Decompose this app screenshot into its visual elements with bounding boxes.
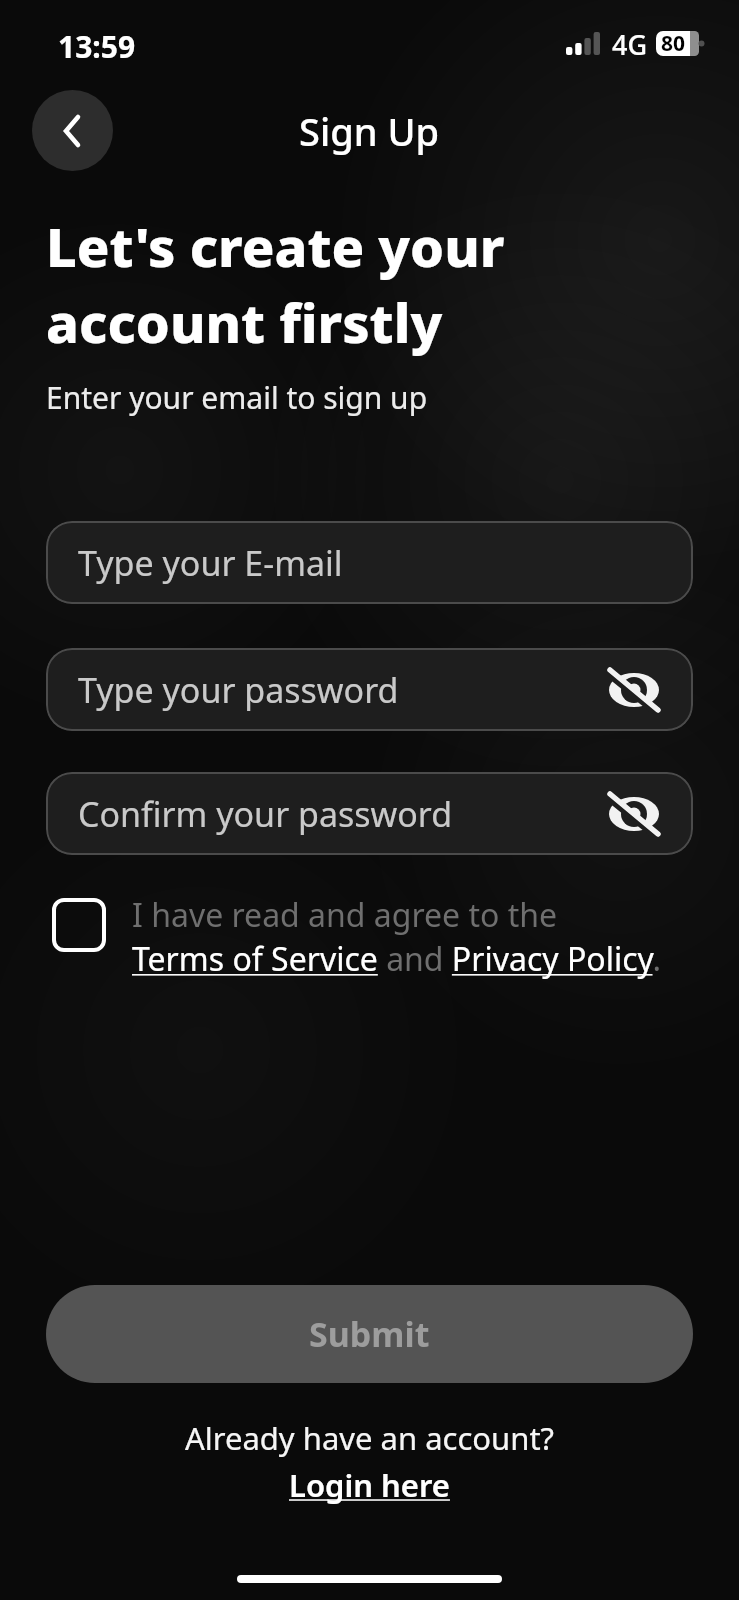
staticText: Sign Up — [299, 105, 440, 157]
staticText: 80 — [661, 29, 686, 58]
staticText: Let's create your account firstly — [46, 209, 505, 359]
staticText: Type your E-mail — [78, 540, 343, 586]
staticText: Enter your email to sign up — [46, 377, 428, 418]
staticText: Submit — [309, 1311, 430, 1357]
staticText: I have read and agree to the — [132, 893, 558, 937]
button[interactable]: Type your E-mail — [46, 521, 693, 604]
staticText: Confirm your password — [78, 791, 453, 837]
button[interactable]: Confirm your password — [46, 772, 693, 855]
staticText: Type your password — [78, 667, 399, 713]
staticText: 13:59 — [58, 26, 136, 60]
button[interactable]: Type your password — [46, 648, 693, 731]
staticText: Login here — [289, 1464, 450, 1506]
staticText: Already have an account? — [0, 1417, 739, 1459]
staticText: Terms of Service and Privacy Policy. — [132, 937, 662, 981]
button[interactable] — [32, 90, 113, 171]
button[interactable]: Login here — [289, 1464, 450, 1506]
button[interactable]: Submit — [46, 1285, 693, 1383]
button[interactable] — [52, 898, 106, 952]
staticText: 4G — [612, 26, 648, 60]
button[interactable]: Terms of Service and Privacy Policy. — [132, 937, 662, 981]
